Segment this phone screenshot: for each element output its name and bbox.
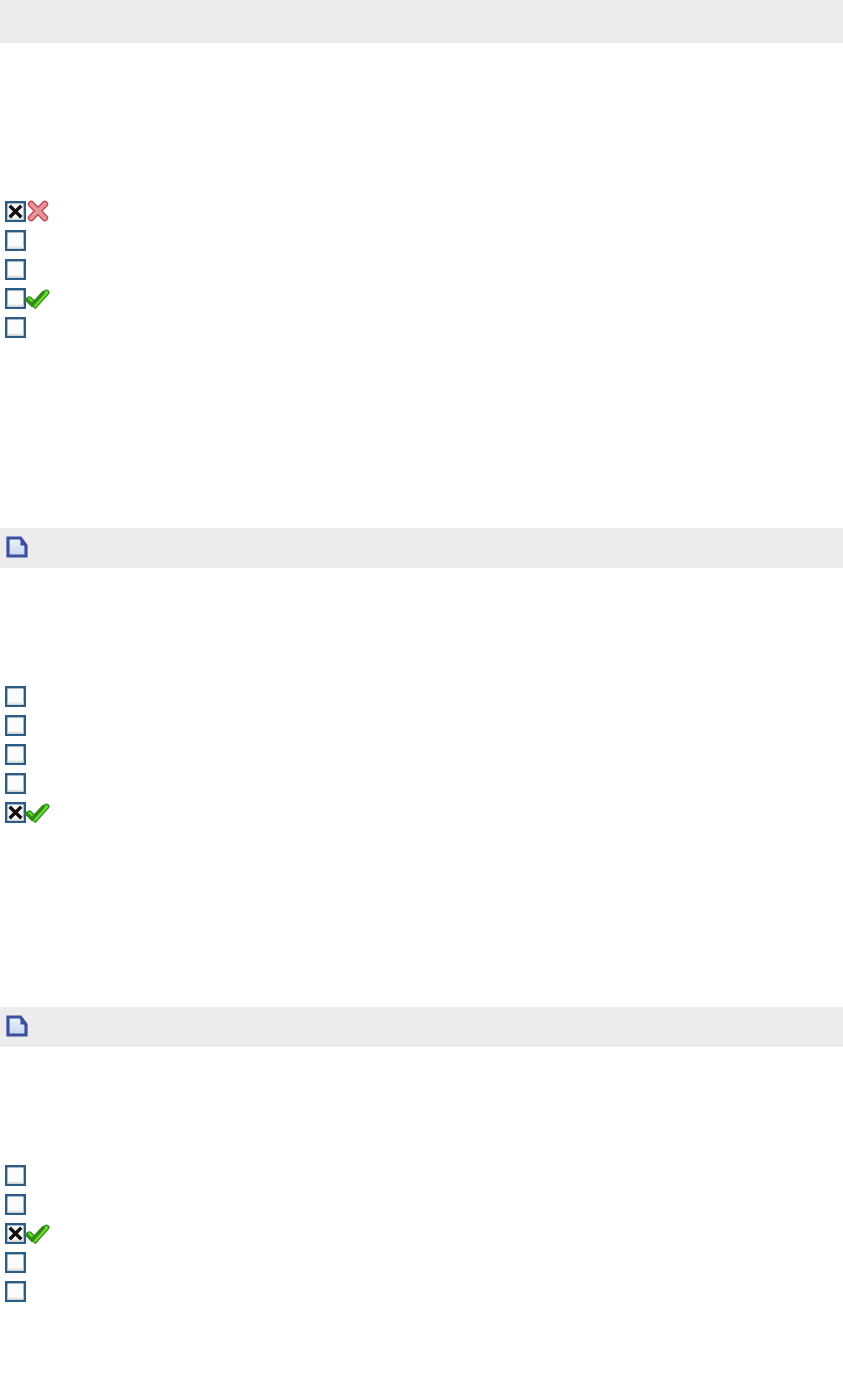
- other: Option 5, selected correct: [5, 802, 26, 823]
- button[interactable]: Option 4, correct answer: [0, 284, 843, 313]
- other: Option 2: [5, 1194, 26, 1215]
- button[interactable]: Option 3: [0, 740, 843, 769]
- button[interactable]: Option 1, selected: [0, 197, 843, 226]
- button[interactable]: Option 5: [0, 1277, 843, 1306]
- other: Option 5: [5, 317, 26, 338]
- button[interactable]: Question document: [0, 1007, 843, 1047]
- button[interactable]: Option 4: [0, 769, 843, 798]
- other: Option 3, selected correct: [5, 1223, 26, 1244]
- other: Option 1, selected: [5, 201, 26, 222]
- button[interactable]: Option 1: [0, 682, 843, 711]
- other: Question document: [6, 1015, 28, 1037]
- other: Option 4: [5, 1252, 26, 1273]
- button[interactable]: Option 3: [0, 255, 843, 284]
- button[interactable]: Option 1: [0, 1161, 843, 1190]
- other: Option 1: [5, 686, 26, 707]
- button[interactable]: Option 3, selected correct: [0, 1219, 843, 1248]
- other: Option 5: [5, 1281, 26, 1302]
- button[interactable]: Option 2: [0, 226, 843, 255]
- other: Option 2: [5, 230, 26, 251]
- other: Option 1: [5, 1165, 26, 1186]
- other: Question document: [6, 536, 28, 558]
- other: Option 3: [5, 744, 26, 765]
- button[interactable]: Option 2: [0, 711, 843, 740]
- button[interactable]: Option 2: [0, 1190, 843, 1219]
- button[interactable]: Option 5: [0, 313, 843, 342]
- button[interactable]: Option 4: [0, 1248, 843, 1277]
- button[interactable]: Option 5, selected correct: [0, 798, 843, 827]
- other: Option 3: [5, 259, 26, 280]
- other: Option 4: [5, 773, 26, 794]
- other: Option 4, correct answer: [5, 288, 26, 309]
- button[interactable]: Question document: [0, 528, 843, 568]
- other: Option 2: [5, 715, 26, 736]
